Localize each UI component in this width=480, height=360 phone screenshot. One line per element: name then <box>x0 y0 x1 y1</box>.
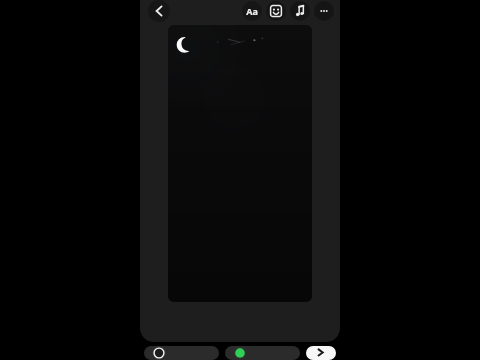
button[interactable]: Close friends <box>225 346 300 360</box>
button[interactable]: Back <box>148 0 170 22</box>
button[interactable]: Text <box>242 1 262 21</box>
button[interactable]: Music <box>290 1 310 21</box>
button[interactable]: More options <box>314 1 334 21</box>
staticText: Aa <box>246 5 258 17</box>
button[interactable] <box>168 25 312 302</box>
button[interactable]: Your story <box>144 346 219 360</box>
button[interactable]: Send <box>306 346 336 360</box>
button[interactable]: Stickers <box>266 1 286 21</box>
